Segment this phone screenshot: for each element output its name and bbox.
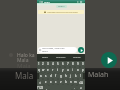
staticText: tanyakan xyxy=(56,56,66,59)
button[interactable]: Send message xyxy=(78,47,84,53)
button[interactable]: l xyxy=(78,73,83,79)
staticText: v xyxy=(60,80,62,84)
button[interactable]: x xyxy=(48,79,53,85)
button[interactable]: 0 xyxy=(80,61,85,67)
button[interactable]: b xyxy=(63,79,68,85)
staticText: s xyxy=(45,74,47,78)
button[interactable]: p xyxy=(80,67,85,73)
staticText: ?123 xyxy=(37,86,44,90)
button[interactable]: Backspace xyxy=(78,79,85,85)
staticText: 6 xyxy=(62,62,64,66)
staticText: Halo kakak, saya mau tanya xyxy=(42,47,65,53)
button[interactable]: t xyxy=(55,67,60,73)
staticText: c xyxy=(55,80,57,84)
button[interactable]: h xyxy=(63,73,68,79)
button[interactable]: d xyxy=(48,73,53,79)
button[interactable]: 4 xyxy=(50,61,55,67)
button[interactable]: q xyxy=(37,67,41,73)
staticText: TODAY xyxy=(58,5,65,8)
button[interactable]: Back xyxy=(38,0,41,3)
button[interactable]: tanyakan xyxy=(53,54,69,61)
button[interactable]: 5 xyxy=(55,61,60,67)
staticText: Mala xyxy=(44,0,50,3)
button[interactable]: 6 xyxy=(60,61,65,67)
staticText: ⌫ xyxy=(79,81,84,84)
staticText: 0 xyxy=(82,62,84,66)
staticText: m xyxy=(74,80,77,84)
staticText: r xyxy=(52,68,54,72)
button[interactable]: c xyxy=(53,79,58,85)
staticText: b xyxy=(65,80,67,84)
staticText: tanya xyxy=(42,56,48,59)
button[interactable]: 8 xyxy=(70,61,75,67)
staticText: y xyxy=(62,68,64,72)
button[interactable]: g xyxy=(58,73,63,79)
staticText: l xyxy=(80,74,81,78)
staticText: p xyxy=(82,68,84,72)
button[interactable]: Video call xyxy=(77,1,79,3)
button[interactable]: Messages are end-to-end encrypted xyxy=(38,10,84,14)
button[interactable]: tanyain xyxy=(69,54,85,61)
button[interactable]: e xyxy=(45,67,50,73)
staticText: 3 xyxy=(47,62,49,66)
button[interactable]: o xyxy=(75,67,80,73)
button[interactable]: 7 xyxy=(65,61,70,67)
button[interactable]: More options xyxy=(82,1,84,3)
button[interactable]: f xyxy=(53,73,58,79)
button[interactable]: m xyxy=(73,79,78,85)
staticText: tanyain xyxy=(73,56,81,59)
button[interactable]: r xyxy=(50,67,55,73)
staticText: k xyxy=(75,74,77,78)
button[interactable]: Halo kakak, saya mau tanya xyxy=(38,47,77,53)
staticText: u xyxy=(67,68,69,72)
button[interactable]: , xyxy=(44,85,49,90)
button[interactable]: v xyxy=(58,79,63,85)
staticText: e xyxy=(47,68,49,72)
staticText: 8 xyxy=(72,62,74,66)
button[interactable]: Voice call xyxy=(80,1,82,3)
button[interactable]: 1 xyxy=(37,61,41,67)
button[interactable]: Enter xyxy=(77,85,85,90)
staticText: 9 xyxy=(77,62,79,66)
button[interactable]: tanya xyxy=(37,54,53,61)
staticText: 5 xyxy=(57,62,59,66)
button[interactable]: . xyxy=(72,85,77,90)
staticText: o xyxy=(77,68,79,72)
button[interactable]: j xyxy=(68,73,73,79)
staticText: i xyxy=(72,68,73,72)
button[interactable]: TODAY xyxy=(56,5,67,8)
staticText: Messages are end-to-end encrypted xyxy=(47,11,78,13)
button[interactable]: Send xyxy=(101,52,117,68)
staticText: j xyxy=(70,74,71,78)
button[interactable]: 2 xyxy=(41,61,45,67)
button[interactable]: 9 xyxy=(75,61,80,67)
staticText: Mala xyxy=(17,57,29,64)
staticText: Halo ka xyxy=(17,52,35,59)
button[interactable]: w xyxy=(41,67,45,73)
staticText: a xyxy=(40,74,42,78)
staticText: q xyxy=(38,68,40,72)
staticText: w xyxy=(42,68,45,72)
staticText: z xyxy=(45,80,47,84)
button[interactable]: i xyxy=(70,67,75,73)
button[interactable]: a xyxy=(39,73,43,79)
button[interactable]: 3 xyxy=(45,61,50,67)
staticText: ↵ xyxy=(80,86,83,89)
button[interactable]: u xyxy=(65,67,70,73)
staticText: ⇧ xyxy=(39,81,42,84)
staticText: x xyxy=(50,80,52,84)
button[interactable]: y xyxy=(60,67,65,73)
staticText: 1 xyxy=(38,62,40,66)
staticText: n xyxy=(70,80,72,84)
button[interactable]: Symbols xyxy=(37,85,44,90)
button[interactable]: Shift xyxy=(37,79,43,85)
staticText: g xyxy=(60,74,62,78)
button[interactable]: k xyxy=(73,73,78,79)
staticText: , xyxy=(46,86,47,90)
button[interactable]: z xyxy=(43,79,48,85)
button[interactable]: n xyxy=(68,79,73,85)
staticText: Mala xyxy=(17,62,31,70)
button[interactable]: s xyxy=(43,73,48,79)
staticText: t xyxy=(57,68,59,72)
